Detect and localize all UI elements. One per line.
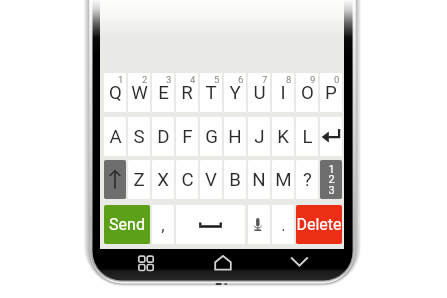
- button[interactable]: L: [296, 117, 318, 156]
- button[interactable]: ?: [296, 160, 318, 199]
- staticText: 8: [286, 74, 292, 85]
- button[interactable]: Delete: [296, 205, 342, 244]
- staticText: V: [205, 169, 217, 191]
- staticText: Y: [229, 82, 241, 104]
- button[interactable]: M: [272, 160, 294, 199]
- staticText: 1: [118, 74, 124, 85]
- button[interactable]: N: [248, 160, 270, 199]
- button[interactable]: .: [272, 205, 294, 244]
- staticText: W: [131, 82, 148, 104]
- staticText: T: [205, 82, 217, 104]
- staticText: I: [280, 82, 286, 104]
- staticText: J: [254, 126, 265, 148]
- button[interactable]: H: [224, 117, 246, 156]
- button[interactable]: Recent apps: [132, 250, 160, 276]
- button[interactable]: V: [200, 160, 222, 199]
- staticText: Send: [109, 215, 145, 234]
- staticText: K: [277, 126, 289, 148]
- staticText: F: [182, 126, 193, 148]
- staticText: L: [302, 126, 313, 148]
- button[interactable]: 6: [224, 73, 246, 112]
- staticText: Q: [109, 82, 122, 104]
- staticText: 7: [262, 74, 268, 85]
- button[interactable]: J: [248, 117, 270, 156]
- button[interactable]: ,: [152, 205, 174, 244]
- button[interactable]: X: [152, 160, 174, 199]
- button[interactable]: 5: [200, 73, 222, 112]
- button[interactable]: 9: [296, 73, 318, 112]
- staticText: Delete: [296, 215, 342, 234]
- button[interactable]: Back: [285, 250, 313, 276]
- staticText: ?: [303, 169, 312, 191]
- staticText: ,: [161, 215, 165, 235]
- button[interactable]: [104, 160, 126, 199]
- button[interactable]: 2: [128, 73, 150, 112]
- staticText: 1 2 3: [328, 163, 335, 197]
- button[interactable]: Home: [209, 250, 237, 276]
- staticText: C: [181, 169, 194, 191]
- button[interactable]: A: [104, 117, 126, 156]
- staticText: A: [109, 126, 122, 148]
- staticText: R: [181, 82, 193, 104]
- staticText: U: [253, 82, 266, 104]
- staticText: .: [281, 215, 286, 235]
- button[interactable]: B: [224, 160, 246, 199]
- button[interactable]: F: [176, 117, 198, 156]
- button[interactable]: 8: [272, 73, 294, 112]
- staticText: P: [325, 82, 337, 104]
- button[interactable]: [248, 205, 270, 244]
- button[interactable]: 3: [152, 73, 174, 112]
- staticText: 3: [166, 74, 172, 85]
- staticText: 2: [142, 74, 148, 85]
- button[interactable]: Z: [128, 160, 150, 199]
- staticText: X: [157, 169, 169, 191]
- staticText: D: [157, 126, 170, 148]
- staticText: 6: [238, 74, 244, 85]
- button[interactable]: 4: [176, 73, 198, 112]
- staticText: E: [158, 82, 169, 104]
- staticText: H: [228, 126, 242, 148]
- button[interactable]: 1 2 3: [320, 160, 342, 199]
- button[interactable]: 7: [248, 73, 270, 112]
- button[interactable]: Send: [104, 205, 150, 244]
- staticText: Z: [133, 169, 145, 191]
- button[interactable]: 1: [104, 73, 126, 112]
- staticText: 4: [190, 74, 196, 85]
- button[interactable]: G: [200, 117, 222, 156]
- staticText: 5: [214, 74, 220, 85]
- button[interactable]: S: [128, 117, 150, 156]
- staticText: S: [133, 126, 145, 148]
- staticText: O: [301, 82, 314, 104]
- button[interactable]: 0: [320, 73, 342, 112]
- button[interactable]: K: [272, 117, 294, 156]
- staticText: 9: [310, 74, 316, 85]
- button[interactable]: [176, 205, 245, 244]
- button[interactable]: C: [176, 160, 198, 199]
- button[interactable]: D: [152, 117, 174, 156]
- staticText: G: [205, 126, 218, 148]
- staticText: M: [275, 169, 292, 191]
- staticText: 0: [334, 74, 340, 85]
- staticText: N: [252, 169, 266, 191]
- staticText: B: [229, 169, 241, 191]
- button[interactable]: [320, 117, 342, 156]
